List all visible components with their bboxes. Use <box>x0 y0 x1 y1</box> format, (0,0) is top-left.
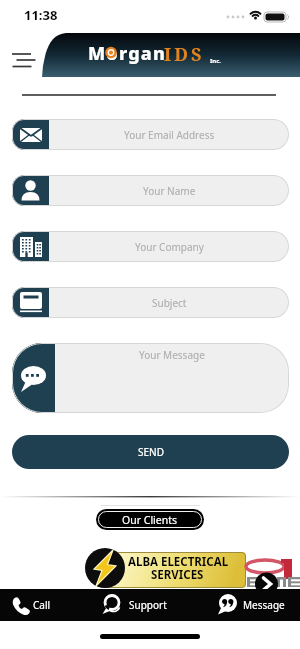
staticText: SEND <box>138 445 164 459</box>
staticText: Call <box>33 598 51 612</box>
staticText: Inc. <box>210 57 222 65</box>
button[interactable]: Your Email Address <box>12 119 289 150</box>
staticText: Your Message <box>139 348 205 362</box>
staticText: ALBA ELECTRICAL <box>128 554 229 570</box>
staticText: Your Name <box>143 184 196 198</box>
button[interactable]: Your Company <box>12 231 289 262</box>
staticText: Morgan <box>88 41 167 66</box>
button[interactable]: SEND <box>12 435 289 469</box>
button[interactable]: Support <box>95 589 185 621</box>
staticText: Our Clients <box>122 513 178 527</box>
staticText: Subject <box>152 296 187 310</box>
button[interactable]: Message <box>210 589 300 621</box>
staticText: SERVICES <box>151 567 204 583</box>
staticText: Your Company <box>135 240 204 254</box>
staticText: Support <box>129 598 167 612</box>
staticText: IDS <box>164 42 205 67</box>
staticText: Your Email Address <box>124 128 215 142</box>
button[interactable]: Subject <box>12 287 289 318</box>
button[interactable]: Our Clients <box>96 509 204 530</box>
button[interactable] <box>6 45 42 75</box>
staticText: 11:38 <box>24 6 58 24</box>
staticText: Message <box>243 598 285 612</box>
button[interactable]: Your Name <box>12 175 289 206</box>
button[interactable]: Your Message <box>12 343 289 413</box>
button[interactable]: Call <box>0 589 72 621</box>
button[interactable] <box>255 572 279 596</box>
